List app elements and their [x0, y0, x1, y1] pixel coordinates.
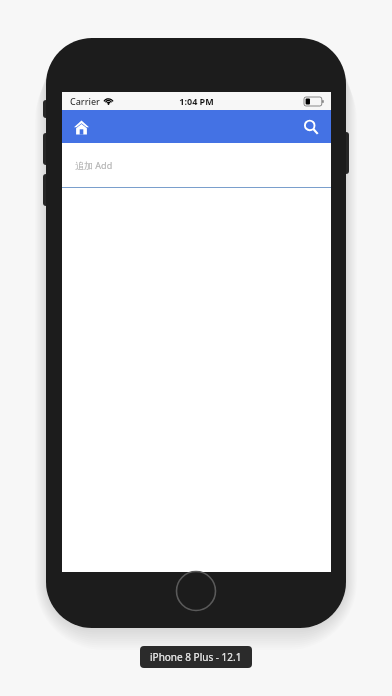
staticText: 追加 Add	[75, 159, 113, 171]
staticText: Carrier	[70, 95, 100, 107]
other: Home button	[175, 570, 217, 612]
staticText: iPhone 8 Plus - 12.1	[150, 650, 242, 664]
button[interactable]: Home	[67, 113, 95, 141]
button[interactable]: 追加 Add	[62, 143, 331, 188]
staticText: 1:04 PM	[179, 95, 214, 107]
button[interactable]: Search	[297, 113, 325, 141]
